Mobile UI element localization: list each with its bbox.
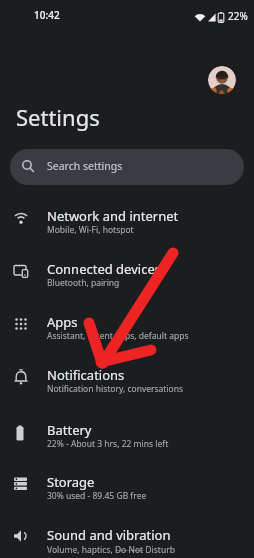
staticText: Notifications [47, 366, 125, 384]
button[interactable]: Network and internet [0, 198, 254, 246]
staticText: Connected devices [47, 260, 161, 278]
button[interactable]: Connected devices [0, 251, 254, 299]
staticText: Sound and vibration [47, 526, 171, 544]
staticText: Notification history, conversations [47, 383, 184, 395]
button[interactable]: Search settings [10, 149, 244, 185]
staticText: Bluetooth, pairing [47, 277, 120, 289]
staticText: Settings [16, 102, 100, 132]
button[interactable]: Storage [0, 464, 254, 512]
button[interactable] [208, 66, 236, 94]
staticText: 10:42 [34, 8, 60, 22]
staticText: Storage [47, 473, 95, 491]
staticText: 30% used - 89.45 GB free [47, 490, 147, 502]
staticText: Volume, haptics, Do Not Disturb [47, 544, 175, 556]
button[interactable]: Sound and vibration [0, 517, 254, 558]
staticText: Search settings [47, 159, 123, 173]
staticText: Network and internet [47, 207, 179, 225]
staticText: Assistant, recent apps, default apps [47, 330, 189, 342]
staticText: Battery [47, 421, 92, 439]
staticText: Mobile, Wi-Fi, hotspot [47, 224, 134, 236]
staticText: 22% [228, 9, 248, 23]
button[interactable]: Notifications [0, 357, 254, 405]
button[interactable]: Battery [0, 412, 254, 460]
button[interactable]: Apps [0, 304, 254, 352]
staticText: Apps [47, 313, 78, 331]
staticText: 22% - About 3 hrs, 22 mins left [47, 438, 169, 450]
